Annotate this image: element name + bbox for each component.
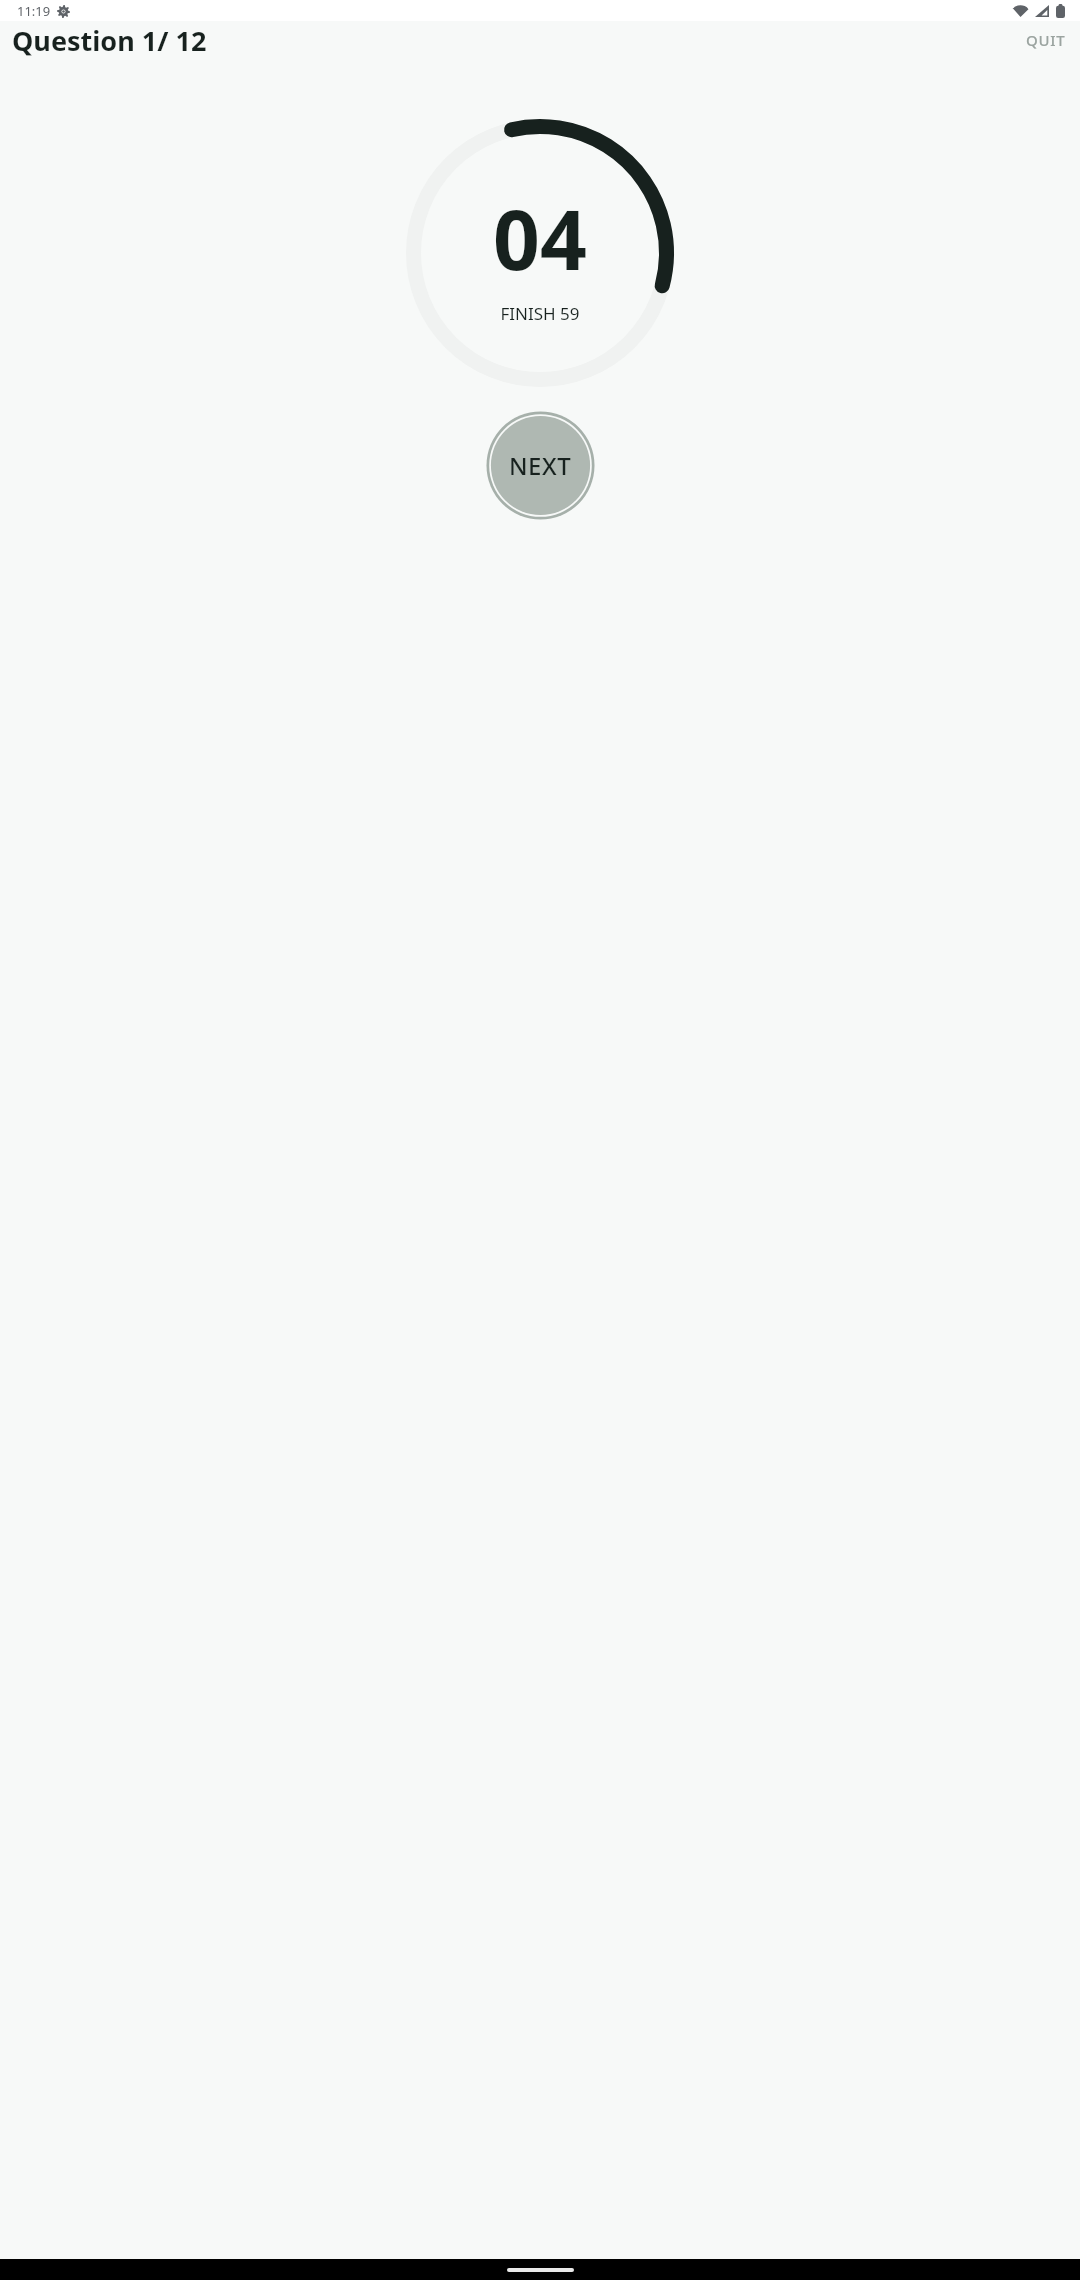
staticText: Question 1/ 12 xyxy=(12,22,207,59)
staticText: QUIT xyxy=(1026,30,1066,50)
staticText: 11:19 xyxy=(17,2,51,20)
staticText: FINISH 59 xyxy=(500,302,580,325)
button[interactable]: NEXT xyxy=(485,410,596,521)
staticText: 04 xyxy=(493,182,587,294)
staticText: NEXT xyxy=(509,449,572,482)
button[interactable]: QUIT xyxy=(1012,24,1080,56)
